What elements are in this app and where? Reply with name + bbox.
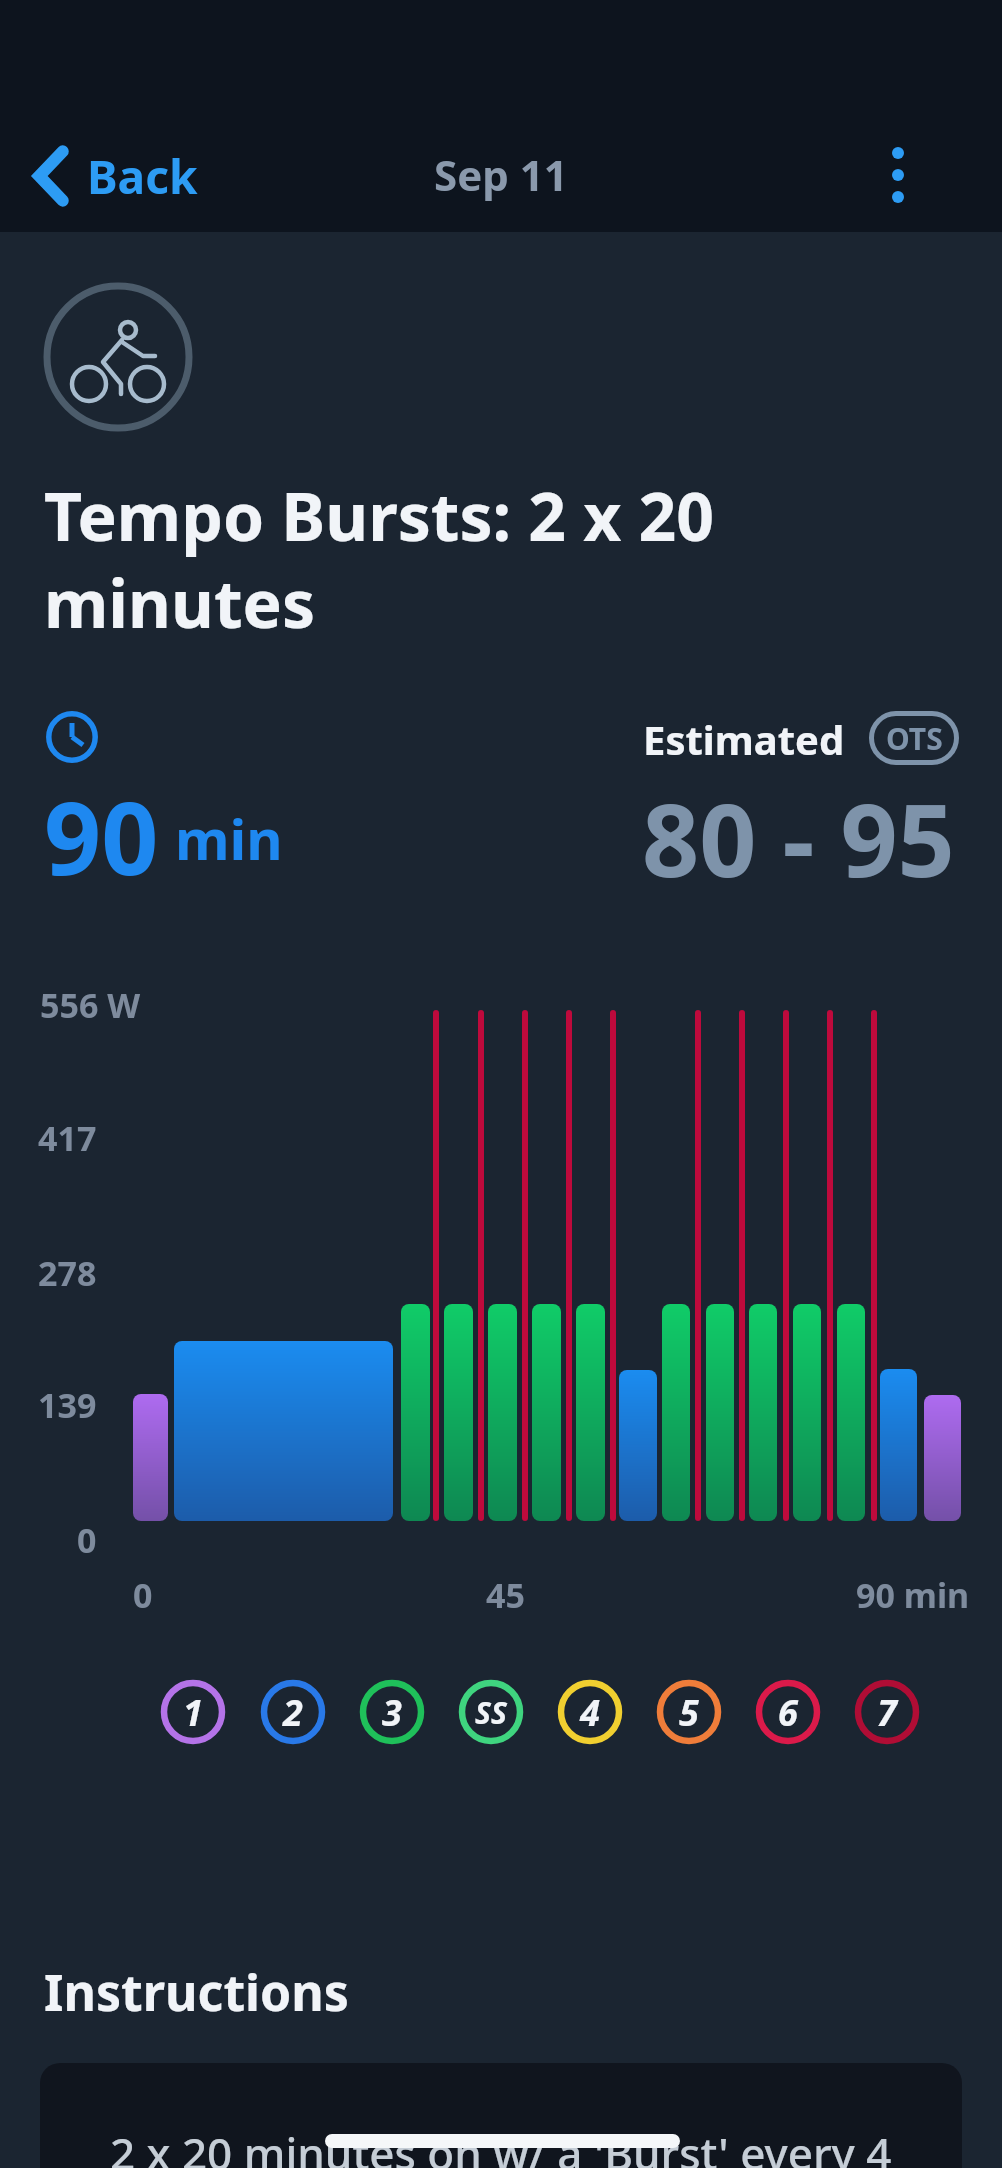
staticText: 2 x 20 minutes on w/ a 'Burst' every 4 (110, 2123, 892, 2168)
button[interactable]: 7 (854, 1679, 920, 1745)
staticText: 0 (77, 1517, 97, 1563)
staticText: Instructions (44, 1958, 349, 2026)
staticText: 139 (38, 1382, 97, 1428)
staticText: 556 W (40, 982, 141, 1028)
staticText: 1 (183, 1688, 203, 1737)
staticText: min (175, 800, 283, 876)
staticText: Back (87, 145, 198, 208)
button[interactable]: OTS (869, 711, 959, 765)
button[interactable]: 5 (656, 1679, 722, 1745)
staticText: OTS (886, 718, 943, 759)
button[interactable]: 2 (260, 1679, 326, 1745)
staticText: 90 (44, 768, 159, 904)
staticText: 2 (283, 1688, 303, 1737)
staticText: 417 (38, 1115, 97, 1161)
staticText: 3 (382, 1688, 402, 1737)
staticText: 5 (679, 1688, 699, 1737)
staticText: 45 (486, 1572, 525, 1618)
staticText: 278 (38, 1250, 97, 1296)
button[interactable]: Back (30, 140, 220, 212)
button[interactable]: 1 (160, 1679, 226, 1745)
staticText: Sep 11 (434, 146, 568, 203)
staticText: Estimated (643, 712, 845, 766)
button[interactable] (862, 130, 934, 220)
staticText: 80 - 95 (642, 770, 955, 906)
staticText: 6 (778, 1688, 798, 1737)
staticText: 90 min (856, 1572, 970, 1618)
staticText: Tempo Bursts: 2 x 20 minutes (44, 470, 714, 647)
button[interactable]: 2 x 20 minutes on w/ a 'Burst' every 4 (40, 2063, 962, 2168)
button[interactable]: SS (458, 1679, 524, 1745)
staticText: 0 (133, 1572, 153, 1618)
staticText: 4 (580, 1688, 600, 1737)
button[interactable]: 6 (755, 1679, 821, 1745)
staticText: 7 (877, 1688, 897, 1737)
staticText: SS (475, 1692, 507, 1733)
button[interactable]: 4 (557, 1679, 623, 1745)
button[interactable]: 3 (359, 1679, 425, 1745)
